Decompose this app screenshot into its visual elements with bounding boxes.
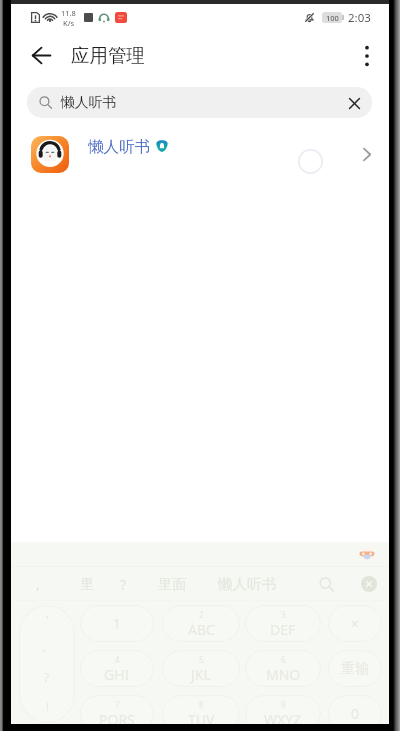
staticText: ABC	[188, 620, 215, 639]
staticText: ?	[120, 574, 127, 594]
staticText: 6	[281, 654, 286, 665]
button[interactable]: 重输	[328, 650, 382, 687]
staticText: 4	[115, 654, 120, 665]
button[interactable]: 8	[162, 695, 240, 724]
button[interactable]: Clear search	[343, 92, 365, 114]
staticText: ×	[351, 614, 360, 633]
button[interactable]: Search	[312, 570, 340, 598]
staticText: 100	[326, 13, 339, 23]
button[interactable]: ?	[120, 571, 127, 597]
button[interactable]: 4	[80, 650, 154, 687]
staticText: 0	[351, 704, 360, 723]
staticText: 9	[281, 699, 286, 710]
button[interactable]: 3	[245, 605, 321, 642]
staticText: DEF	[270, 620, 296, 639]
staticText: 懒人听书	[88, 137, 151, 155]
staticText: !	[46, 699, 49, 714]
button[interactable]: 5	[162, 650, 240, 687]
staticText: WXYZ	[264, 710, 302, 724]
staticText: 里	[80, 575, 95, 593]
staticText: 7	[115, 699, 120, 710]
button[interactable]: 0	[328, 695, 382, 724]
staticText: 11.8	[61, 8, 76, 18]
button[interactable]: 2	[162, 605, 240, 642]
staticText: 3	[281, 609, 286, 620]
button[interactable]: Close suggestions	[355, 570, 383, 598]
button[interactable]: 7	[80, 695, 154, 724]
button[interactable]: 懒人听书	[11, 128, 389, 181]
button[interactable]: 懒人听书	[27, 87, 372, 118]
staticText: 2:03	[348, 10, 371, 26]
staticText: 2	[199, 609, 204, 620]
staticText: ?	[44, 669, 50, 685]
button[interactable]: 6	[245, 650, 321, 687]
staticText: K/s	[63, 18, 75, 28]
button[interactable]: 里面	[158, 571, 187, 597]
staticText: GHI	[104, 665, 130, 684]
staticText: JKL	[191, 665, 211, 684]
staticText: TUV	[188, 710, 215, 724]
staticText: 里面	[158, 575, 187, 593]
staticText: 8	[199, 699, 204, 710]
staticText: 5	[199, 654, 204, 665]
button[interactable]: Select app	[294, 145, 326, 177]
button[interactable]: ,	[36, 571, 40, 597]
button[interactable]: 里	[80, 571, 95, 597]
staticText: 1	[113, 614, 122, 633]
staticText: 重输	[341, 660, 369, 678]
button[interactable]: 9	[245, 695, 321, 724]
staticText: MNO	[266, 665, 301, 684]
staticText: '	[46, 612, 49, 627]
staticText: PQRS	[99, 710, 135, 724]
staticText: ,	[36, 575, 40, 593]
button[interactable]: 懒人听书	[218, 571, 276, 597]
staticText: 懒人听书	[218, 575, 276, 593]
button[interactable]: App details	[353, 140, 381, 168]
button[interactable]: More options	[344, 32, 389, 79]
staticText: 应用管理	[71, 44, 145, 67]
staticText: 懒人听书	[61, 94, 117, 111]
button[interactable]: Back	[18, 32, 64, 79]
